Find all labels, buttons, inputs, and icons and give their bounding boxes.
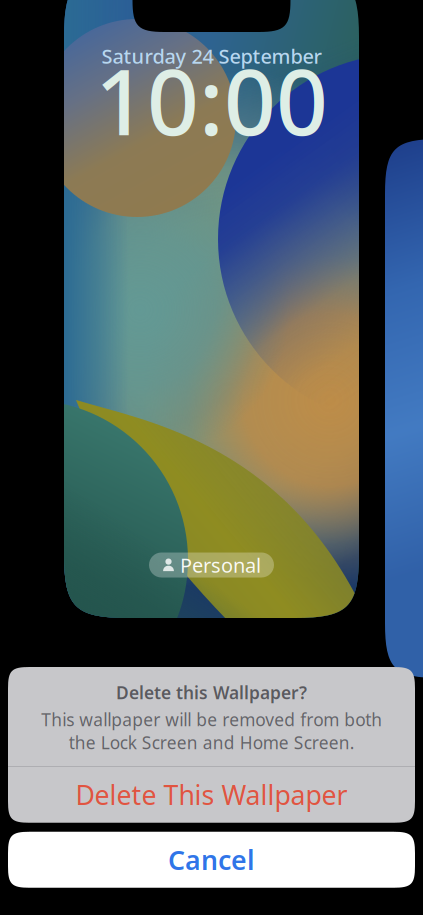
staticText: 10:00	[95, 40, 328, 160]
button[interactable]: Cancel	[8, 832, 415, 888]
staticText: Cancel	[168, 842, 255, 877]
button[interactable]: Delete This Wallpaper	[8, 767, 415, 823]
staticText: Delete This Wallpaper	[75, 777, 347, 812]
staticText: Delete this Wallpaper?	[116, 681, 307, 704]
staticText: Personal	[180, 552, 261, 578]
staticText: This wallpaper will be removed from both…	[41, 708, 382, 754]
staticText: Saturday 24 September	[101, 43, 321, 69]
